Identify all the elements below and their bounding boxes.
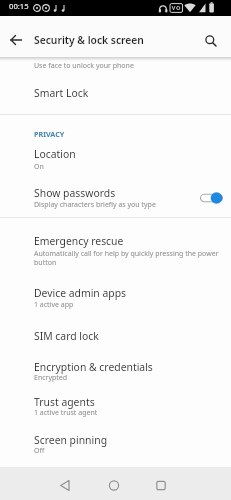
staticText: 00:15 [9,1,29,11]
staticText: SIM card lock [34,329,99,343]
staticText: Encrypted [34,373,68,383]
button[interactable] [0,390,231,427]
button[interactable] [4,28,28,52]
button[interactable] [0,78,231,112]
staticText: Automatically call for help by quickly p… [34,249,219,259]
button[interactable] [148,471,174,497]
staticText: button [34,258,57,268]
staticText: Display characters briefly as you type [34,200,156,210]
staticText: Show passwords [34,186,116,200]
staticText: Trust agents [34,395,95,409]
staticText: Location [34,147,76,161]
staticText: Use face to unlock your phone [34,61,134,71]
button[interactable] [0,141,231,179]
staticText: Screen pinning [34,433,108,447]
button[interactable] [0,181,231,217]
button[interactable] [52,471,78,497]
button[interactable] [0,280,231,318]
staticText: Encryption & credentials [34,360,153,374]
staticText: 1 active app [34,300,74,310]
button[interactable] [198,188,226,208]
staticText: Smart Lock [34,86,89,100]
staticText: Device admin apps [34,286,127,300]
staticText: On [34,162,44,172]
staticText: Off [34,446,45,456]
staticText: PRIVACY [34,129,65,139]
button[interactable] [0,320,231,352]
button[interactable] [0,428,231,464]
button[interactable] [101,471,127,497]
button[interactable] [198,28,222,52]
staticText: 1 active trust agent [34,408,98,418]
staticText: Security & lock screen [34,33,144,47]
button[interactable] [0,226,231,277]
staticText: Emergency rescue [34,234,124,248]
button[interactable] [0,354,231,390]
button[interactable] [0,58,231,78]
